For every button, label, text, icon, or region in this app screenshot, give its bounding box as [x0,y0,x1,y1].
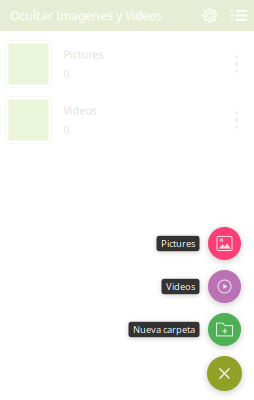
button[interactable]: Sort and view options [224,0,254,31]
staticText: Videos [63,103,96,117]
button[interactable]: Nueva carpeta [0,308,254,351]
button[interactable]: Videos [0,92,254,148]
staticText: Ocultar Imagenes y Videos [10,7,162,23]
staticText: Videos [166,280,195,293]
button[interactable]: Pictures [0,36,254,92]
staticText: Nueva carpeta [133,323,195,336]
button[interactable]: Pictures [0,222,254,265]
button[interactable]: Settings [196,0,224,31]
staticText: 0 [63,66,69,81]
staticText: Pictures [161,237,195,250]
button[interactable]: Videos [0,265,254,308]
staticText: 0 [63,122,69,137]
staticText: Pictures [63,47,103,61]
button[interactable]: Close menu [0,356,254,391]
